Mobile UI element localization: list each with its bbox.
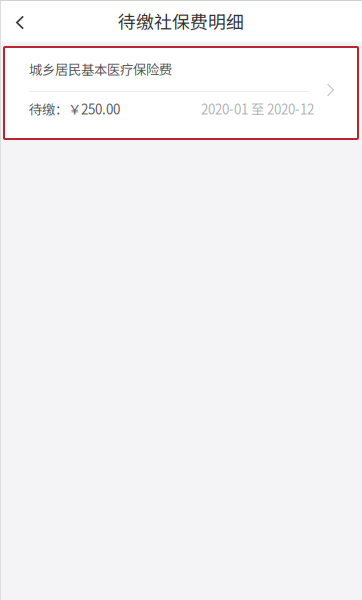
staticText: 待缴社保费明细 — [118, 8, 244, 34]
staticText: 城乡居民基本医疗保险费 — [29, 59, 172, 79]
button[interactable]: 城乡居民基本医疗保险费 — [0, 42, 362, 139]
staticText: 2020-01 至 2020-12 — [201, 99, 314, 118]
button[interactable]: Back — [0, 0, 40, 43]
staticText: 待缴：￥250.00 — [29, 99, 120, 118]
